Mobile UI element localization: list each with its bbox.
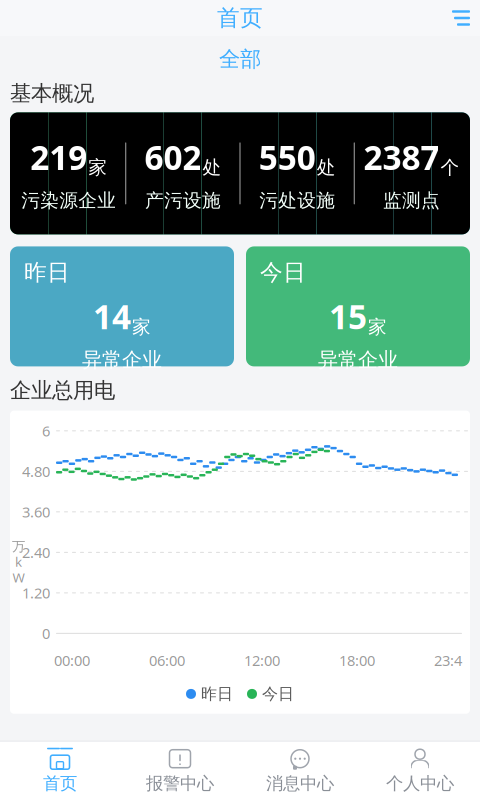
button[interactable]: 全部 <box>0 36 480 80</box>
staticText: 全部 <box>219 46 261 72</box>
staticText: 18:00 <box>339 651 375 670</box>
staticText: 12:00 <box>244 651 280 670</box>
staticText: 15 <box>329 294 367 338</box>
staticText: 异常企业 <box>318 347 398 372</box>
staticText: 2.40 <box>22 543 50 562</box>
staticText: 3.60 <box>22 502 50 522</box>
staticText: 今日 <box>262 684 294 704</box>
staticText: 报警中心 <box>146 773 214 794</box>
staticText: 今日 <box>260 258 306 286</box>
staticText: 消息中心 <box>266 773 334 794</box>
staticText: 06:00 <box>149 651 185 670</box>
staticText: 异常企业 <box>82 347 162 372</box>
staticText: 首页 <box>217 4 263 32</box>
staticText: W <box>12 568 24 586</box>
staticText: 个 <box>440 156 459 179</box>
staticText: 个人中心 <box>386 773 454 794</box>
staticText: k <box>15 553 22 570</box>
staticText: 企业总用电 <box>10 377 115 404</box>
staticText: 550 <box>259 135 316 179</box>
staticText: 1.20 <box>22 583 50 603</box>
staticText: 污染源企业 <box>21 189 116 212</box>
staticText: 污处设施 <box>259 189 335 212</box>
staticText: 00:00 <box>54 651 90 670</box>
staticText: 首页 <box>43 773 77 794</box>
button[interactable]: 消息中心 <box>240 742 360 800</box>
staticText: 处 <box>317 156 336 179</box>
staticText: 处 <box>202 156 221 179</box>
staticText: 昨日 <box>24 258 70 286</box>
staticText: 昨日 <box>201 684 233 704</box>
staticText: 219 <box>30 135 87 179</box>
button[interactable]: 今日 <box>246 246 470 366</box>
button[interactable]: 昨日 <box>10 246 234 366</box>
staticText: 602 <box>144 135 201 179</box>
button[interactable]: 首页 <box>0 742 120 800</box>
staticText: 14 <box>93 294 131 338</box>
button[interactable]: 个人中心 <box>360 742 480 800</box>
staticText: 基本概况 <box>10 80 94 106</box>
staticText: 0 <box>42 624 50 643</box>
button[interactable]: 报警中心 <box>120 742 240 800</box>
staticText: 6 <box>42 421 50 441</box>
staticText: 23:4 <box>434 651 462 670</box>
staticText: 家 <box>368 316 387 338</box>
staticText: 家 <box>88 156 107 179</box>
staticText: 万 <box>12 538 25 555</box>
staticText: 2387 <box>363 135 439 179</box>
staticText: 家 <box>132 316 151 338</box>
staticText: 4.80 <box>22 462 50 481</box>
staticText: 监测点 <box>383 189 440 212</box>
staticText: 产污设施 <box>145 189 221 212</box>
button[interactable]: Menu <box>442 0 480 36</box>
